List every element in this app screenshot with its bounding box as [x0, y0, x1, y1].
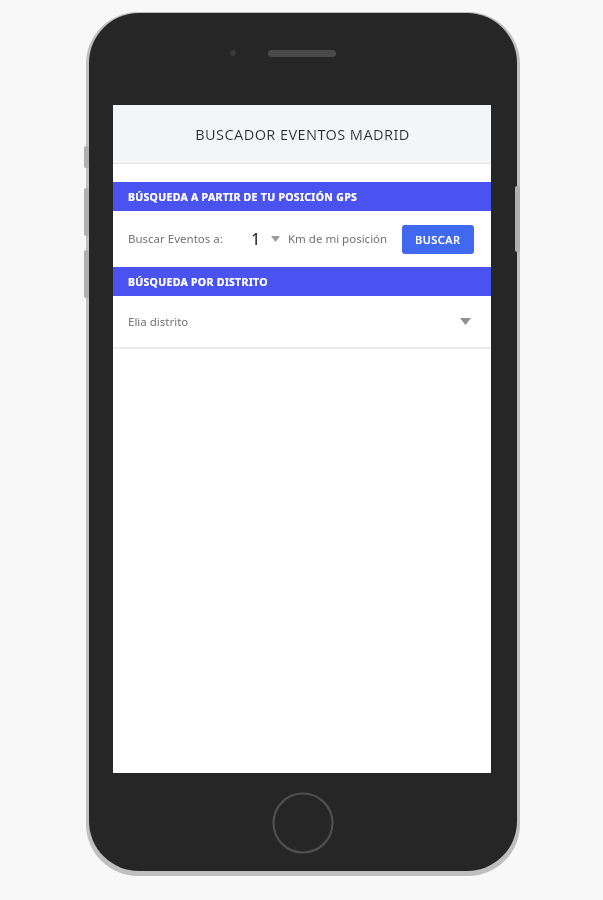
button[interactable]: BÚSQUEDA POR DISTRITO [113, 267, 491, 296]
staticText: Km de mi posición [288, 231, 388, 247]
staticText: Elia distrito [128, 314, 189, 330]
staticText: BÚSQUEDA POR DISTRITO [128, 275, 268, 289]
staticText: BUSCADOR EVENTOS MADRID [195, 124, 410, 144]
button[interactable]: BÚSQUEDA A PARTIR DE TU POSICIÓN GPS [113, 182, 491, 211]
other: Abrir lista de distritos [460, 318, 471, 325]
button[interactable]: 1 [251, 224, 280, 254]
staticText: 1 [251, 228, 261, 250]
button[interactable]: BUSCAR [402, 225, 474, 254]
staticText: BUSCAR [415, 232, 461, 247]
staticText: Buscar Eventos a: [128, 231, 223, 247]
staticText: BÚSQUEDA A PARTIR DE TU POSICIÓN GPS [128, 190, 358, 204]
button[interactable]: Elia distrito [113, 296, 491, 347]
